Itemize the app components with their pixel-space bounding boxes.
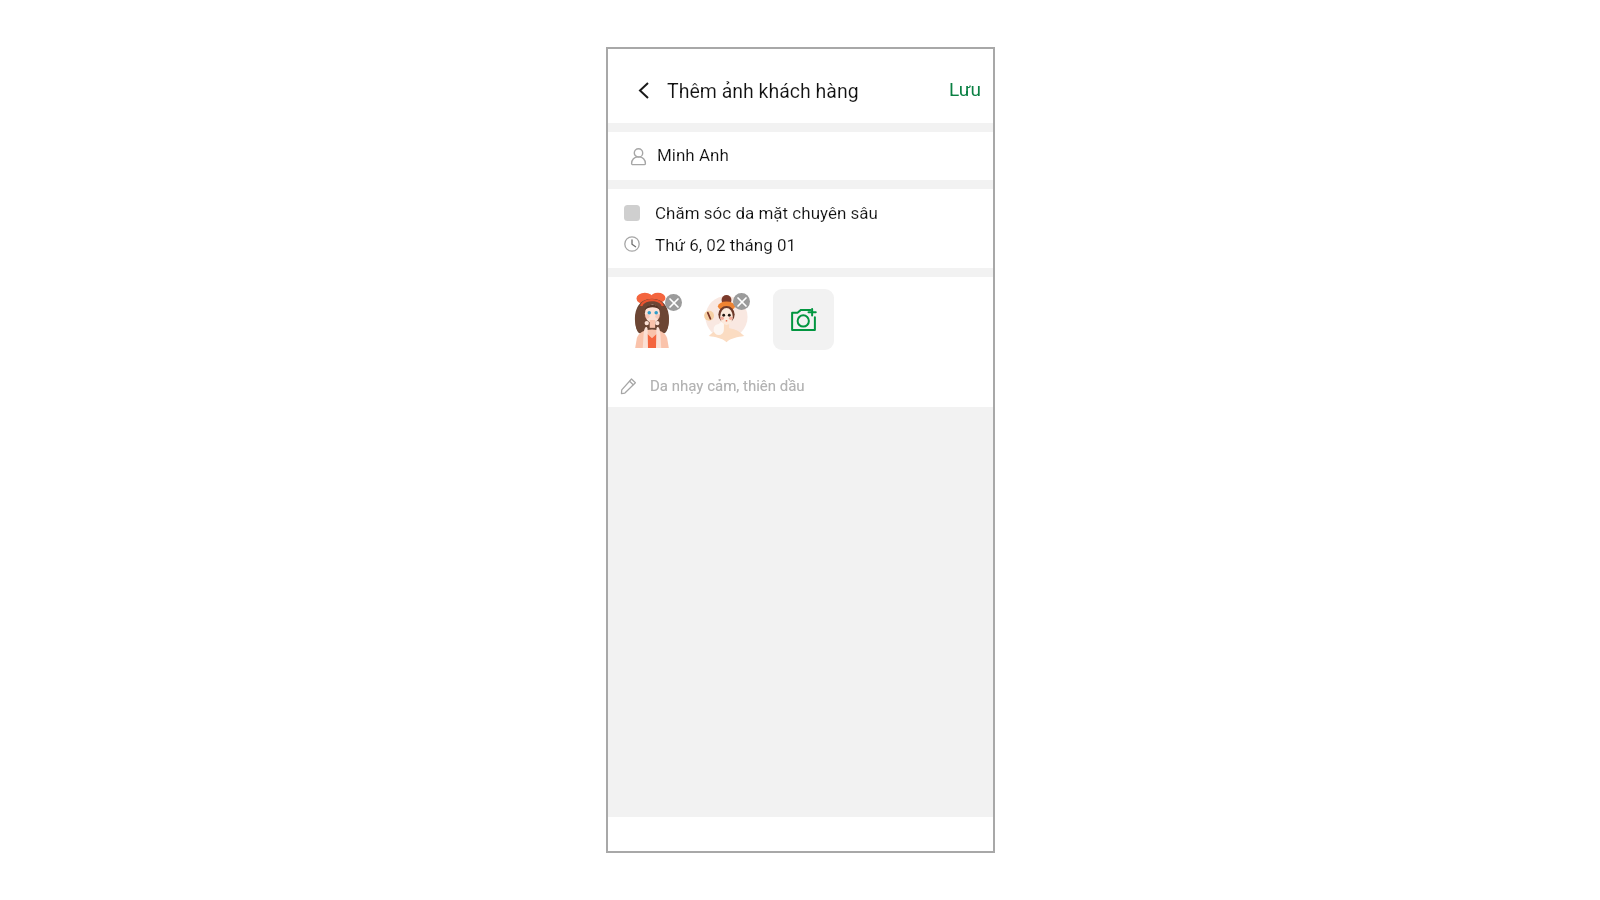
button[interactable]: Back: [628, 74, 660, 106]
staticText: Da nhạy cảm, thiên dầu: [650, 377, 805, 395]
button[interactable]: Remove photo: [665, 294, 682, 311]
button[interactable]: Da nhạy cảm, thiên dầu: [608, 368, 993, 404]
button[interactable]: Minh Anh: [608, 132, 993, 180]
staticText: Chăm sóc da mặt chuyên sâu: [655, 203, 878, 223]
staticText: Minh Anh: [657, 145, 729, 165]
button[interactable]: Add photo: [773, 289, 834, 350]
staticText: Thêm ảnh khách hàng: [667, 80, 859, 103]
button[interactable]: Thứ 6, 02 tháng 01: [608, 229, 993, 260]
button[interactable]: Remove photo: [733, 293, 750, 310]
staticText: Thứ 6, 02 tháng 01: [655, 235, 797, 255]
button[interactable]: Chăm sóc da mặt chuyên sâu: [608, 197, 993, 229]
staticText: Lưu: [949, 78, 982, 100]
button[interactable]: Lưu: [943, 73, 988, 105]
